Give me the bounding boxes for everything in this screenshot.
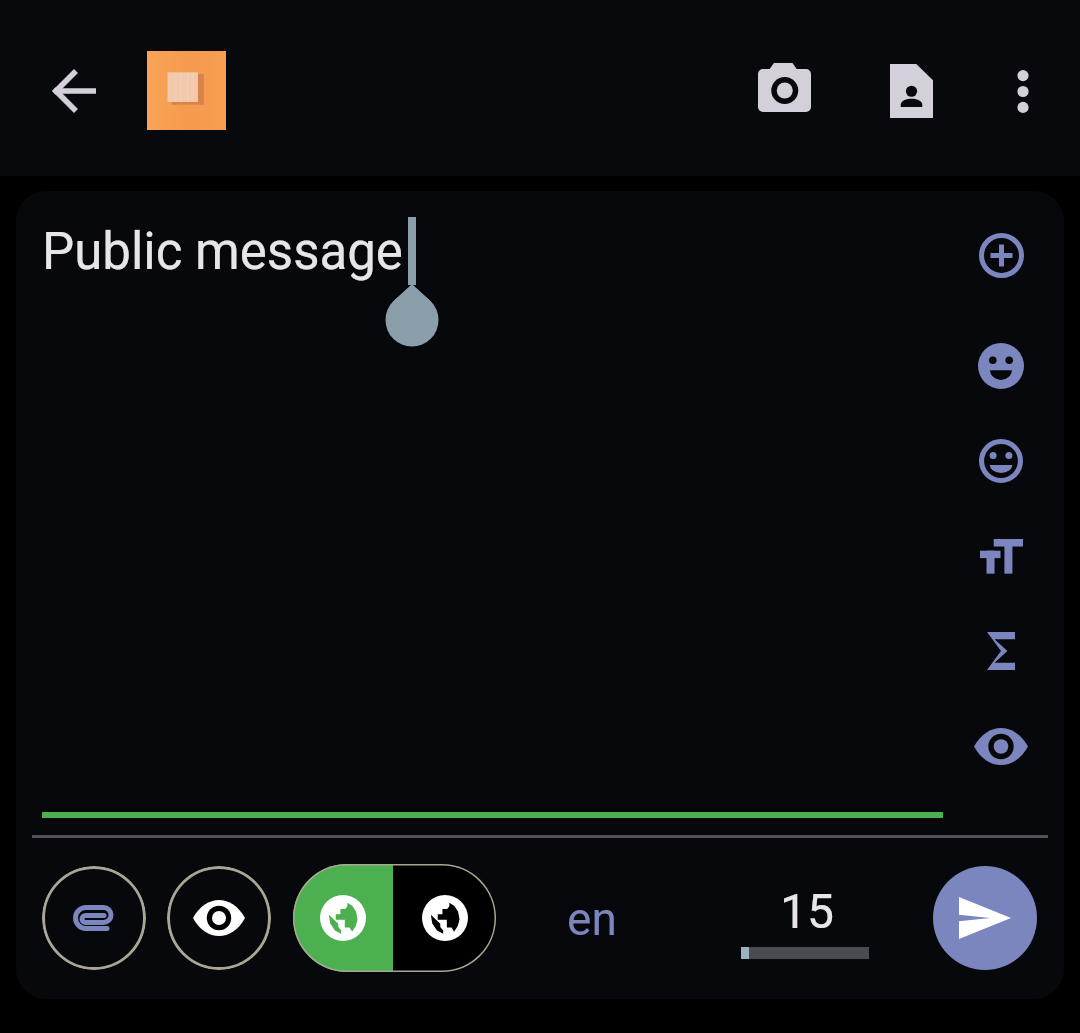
button[interactable]: Preview [963, 723, 1039, 769]
staticText: en [567, 892, 617, 946]
button[interactable]: Preview [167, 866, 271, 970]
button[interactable]: Attach file [42, 866, 146, 970]
button[interactable]: Add [963, 232, 1039, 278]
button[interactable]: Back [32, 49, 116, 133]
button[interactable]: Emoji [963, 343, 1039, 389]
button[interactable]: Formula [963, 628, 1039, 674]
button[interactable]: Visibility toggle [293, 864, 496, 972]
staticText: Public message [42, 222, 403, 282]
button[interactable]: More options [978, 44, 1067, 138]
staticText: 15 [780, 883, 834, 939]
button[interactable]: Camera [740, 40, 829, 134]
button[interactable]: Text size [963, 533, 1039, 579]
button[interactable]: Language [546, 884, 638, 954]
button[interactable]: Contacts [867, 44, 956, 138]
button[interactable]: Sticker [963, 438, 1039, 484]
button[interactable]: Priority [735, 880, 877, 972]
button[interactable]: Send [933, 866, 1037, 970]
button[interactable]: Contact photo [147, 51, 226, 130]
